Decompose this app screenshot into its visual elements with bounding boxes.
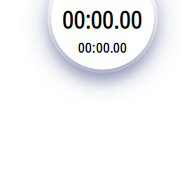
button[interactable]: 00:00.00 [22,8,182,52]
staticText: 00:00.00 [78,38,127,57]
staticText: 00:00.00 [62,3,143,37]
